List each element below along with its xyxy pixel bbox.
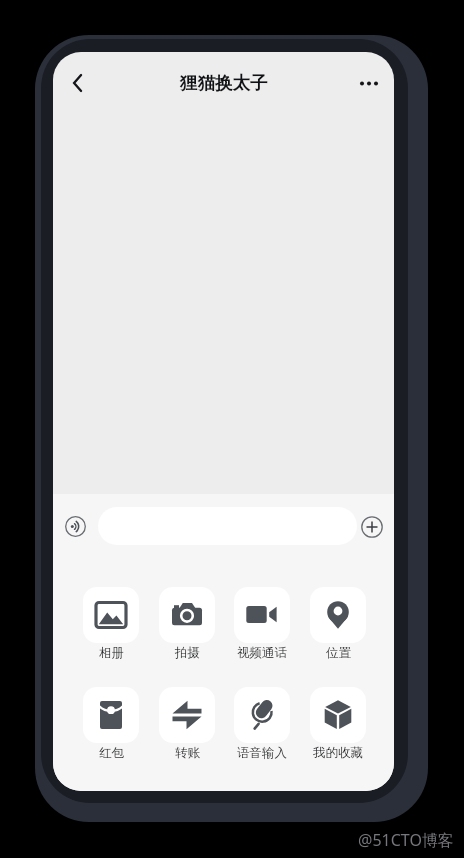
staticText: 位置 <box>326 645 351 661</box>
staticText: 转账 <box>175 745 200 761</box>
staticText: 语音输入 <box>237 745 287 761</box>
staticText: @51CTO博客 <box>358 829 454 851</box>
staticText: 红包 <box>99 745 124 761</box>
staticText: 狸猫换太子 <box>180 72 268 94</box>
staticText: 视频通话 <box>237 645 287 661</box>
staticText: 相册 <box>99 645 124 661</box>
staticText: 拍摄 <box>175 645 200 661</box>
staticText: 我的收藏 <box>313 745 363 761</box>
